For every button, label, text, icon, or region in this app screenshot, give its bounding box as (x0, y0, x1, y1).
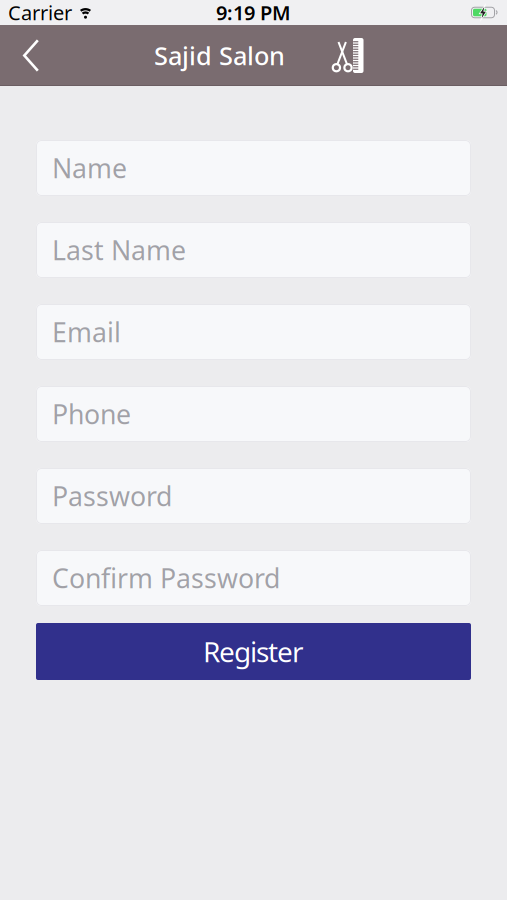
staticText: Password (52, 478, 172, 514)
staticText: Name (52, 150, 127, 186)
staticText: 9:19 PM (216, 0, 291, 26)
button[interactable]: Phone (36, 386, 471, 442)
staticText: Register (203, 633, 304, 670)
button[interactable]: Back (0, 25, 39, 86)
button[interactable]: Register (36, 623, 471, 680)
staticText: Carrier (8, 0, 72, 26)
button[interactable]: Confirm Password (36, 550, 471, 606)
button[interactable]: Name (36, 140, 471, 196)
staticText: Last Name (52, 232, 186, 268)
button[interactable]: Password (36, 468, 471, 524)
staticText: Confirm Password (52, 560, 280, 596)
button[interactable]: Last Name (36, 222, 471, 278)
staticText: Sajid Salon (154, 39, 285, 72)
button[interactable]: Email (36, 304, 471, 360)
staticText: Phone (52, 396, 131, 432)
staticText: Email (52, 314, 121, 350)
